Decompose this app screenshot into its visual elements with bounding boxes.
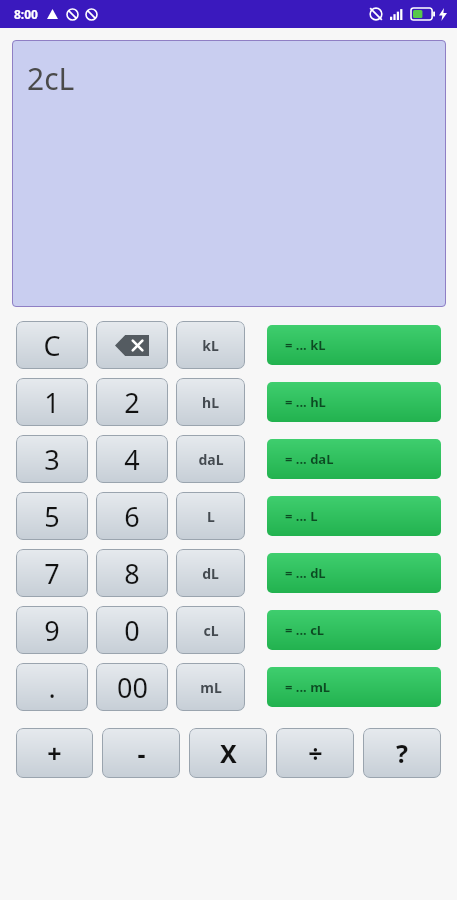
button[interactable]: 4 xyxy=(96,435,168,483)
button[interactable]: cL xyxy=(176,606,245,654)
button[interactable]: + xyxy=(16,728,93,778)
button[interactable]: L xyxy=(176,492,245,540)
staticText: 0 xyxy=(124,612,140,649)
button[interactable]: = ... cL xyxy=(267,610,441,650)
button[interactable]: = ... L xyxy=(267,496,441,536)
button[interactable]: mL xyxy=(176,663,245,711)
staticText: 3 xyxy=(44,441,60,478)
staticText: 2cL xyxy=(27,58,75,99)
button[interactable]: = ... hL xyxy=(267,382,441,422)
button[interactable]: 1 xyxy=(16,378,88,426)
button[interactable]: 2 xyxy=(96,378,168,426)
button[interactable]: 6 xyxy=(96,492,168,540)
staticText: 1 xyxy=(44,384,60,421)
button[interactable]: C xyxy=(16,321,88,369)
staticText: = ... hL xyxy=(285,393,326,411)
staticText: 8 xyxy=(124,555,140,592)
button[interactable]: daL xyxy=(176,435,245,483)
staticText: 7 xyxy=(44,555,60,592)
button[interactable]: = ... daL xyxy=(267,439,441,479)
staticText: 00 xyxy=(117,669,148,706)
staticText: . xyxy=(48,669,56,706)
staticText: C xyxy=(43,327,61,364)
staticText: kL xyxy=(202,336,219,355)
staticText: 9 xyxy=(44,612,60,649)
button[interactable]: kL xyxy=(176,321,245,369)
button[interactable]: = ... kL xyxy=(267,325,441,365)
staticText: 6 xyxy=(124,498,140,535)
button[interactable]: hL xyxy=(176,378,245,426)
button[interactable]: = ... mL xyxy=(267,667,441,707)
staticText: dL xyxy=(202,564,219,583)
staticText: - xyxy=(137,736,146,770)
staticText: daL xyxy=(198,450,224,469)
staticText: hL xyxy=(202,393,219,412)
staticText: = ... cL xyxy=(285,621,325,639)
staticText: mL xyxy=(200,678,222,697)
staticText: + xyxy=(47,736,62,770)
button[interactable]: dL xyxy=(176,549,245,597)
button[interactable]: ? xyxy=(363,728,441,778)
staticText: 4 xyxy=(124,441,140,478)
staticText: 2 xyxy=(124,384,140,421)
staticText: = ... kL xyxy=(285,336,326,354)
staticText: cL xyxy=(203,621,219,640)
staticText: = ... daL xyxy=(285,450,334,468)
staticText: L xyxy=(207,507,215,526)
button[interactable]: 00 xyxy=(96,663,168,711)
staticText: = ... dL xyxy=(285,564,326,582)
button[interactable]: 5 xyxy=(16,492,88,540)
button[interactable]: ÷ xyxy=(276,728,354,778)
staticText: ÷ xyxy=(308,736,323,770)
staticText: = ... mL xyxy=(285,678,331,696)
button[interactable]: . xyxy=(16,663,88,711)
button[interactable]: = ... dL xyxy=(267,553,441,593)
button[interactable]: - xyxy=(102,728,180,778)
button[interactable]: Backspace xyxy=(96,321,168,369)
button[interactable]: 8 xyxy=(96,549,168,597)
button[interactable]: 3 xyxy=(16,435,88,483)
button[interactable]: 7 xyxy=(16,549,88,597)
staticText: = ... L xyxy=(285,507,318,525)
staticText: X xyxy=(220,736,237,770)
staticText: ? xyxy=(396,736,408,770)
button[interactable]: 0 xyxy=(96,606,168,654)
staticText: 8:00 xyxy=(14,6,38,22)
staticText: 5 xyxy=(44,498,60,535)
button[interactable]: X xyxy=(189,728,267,778)
button[interactable]: 9 xyxy=(16,606,88,654)
